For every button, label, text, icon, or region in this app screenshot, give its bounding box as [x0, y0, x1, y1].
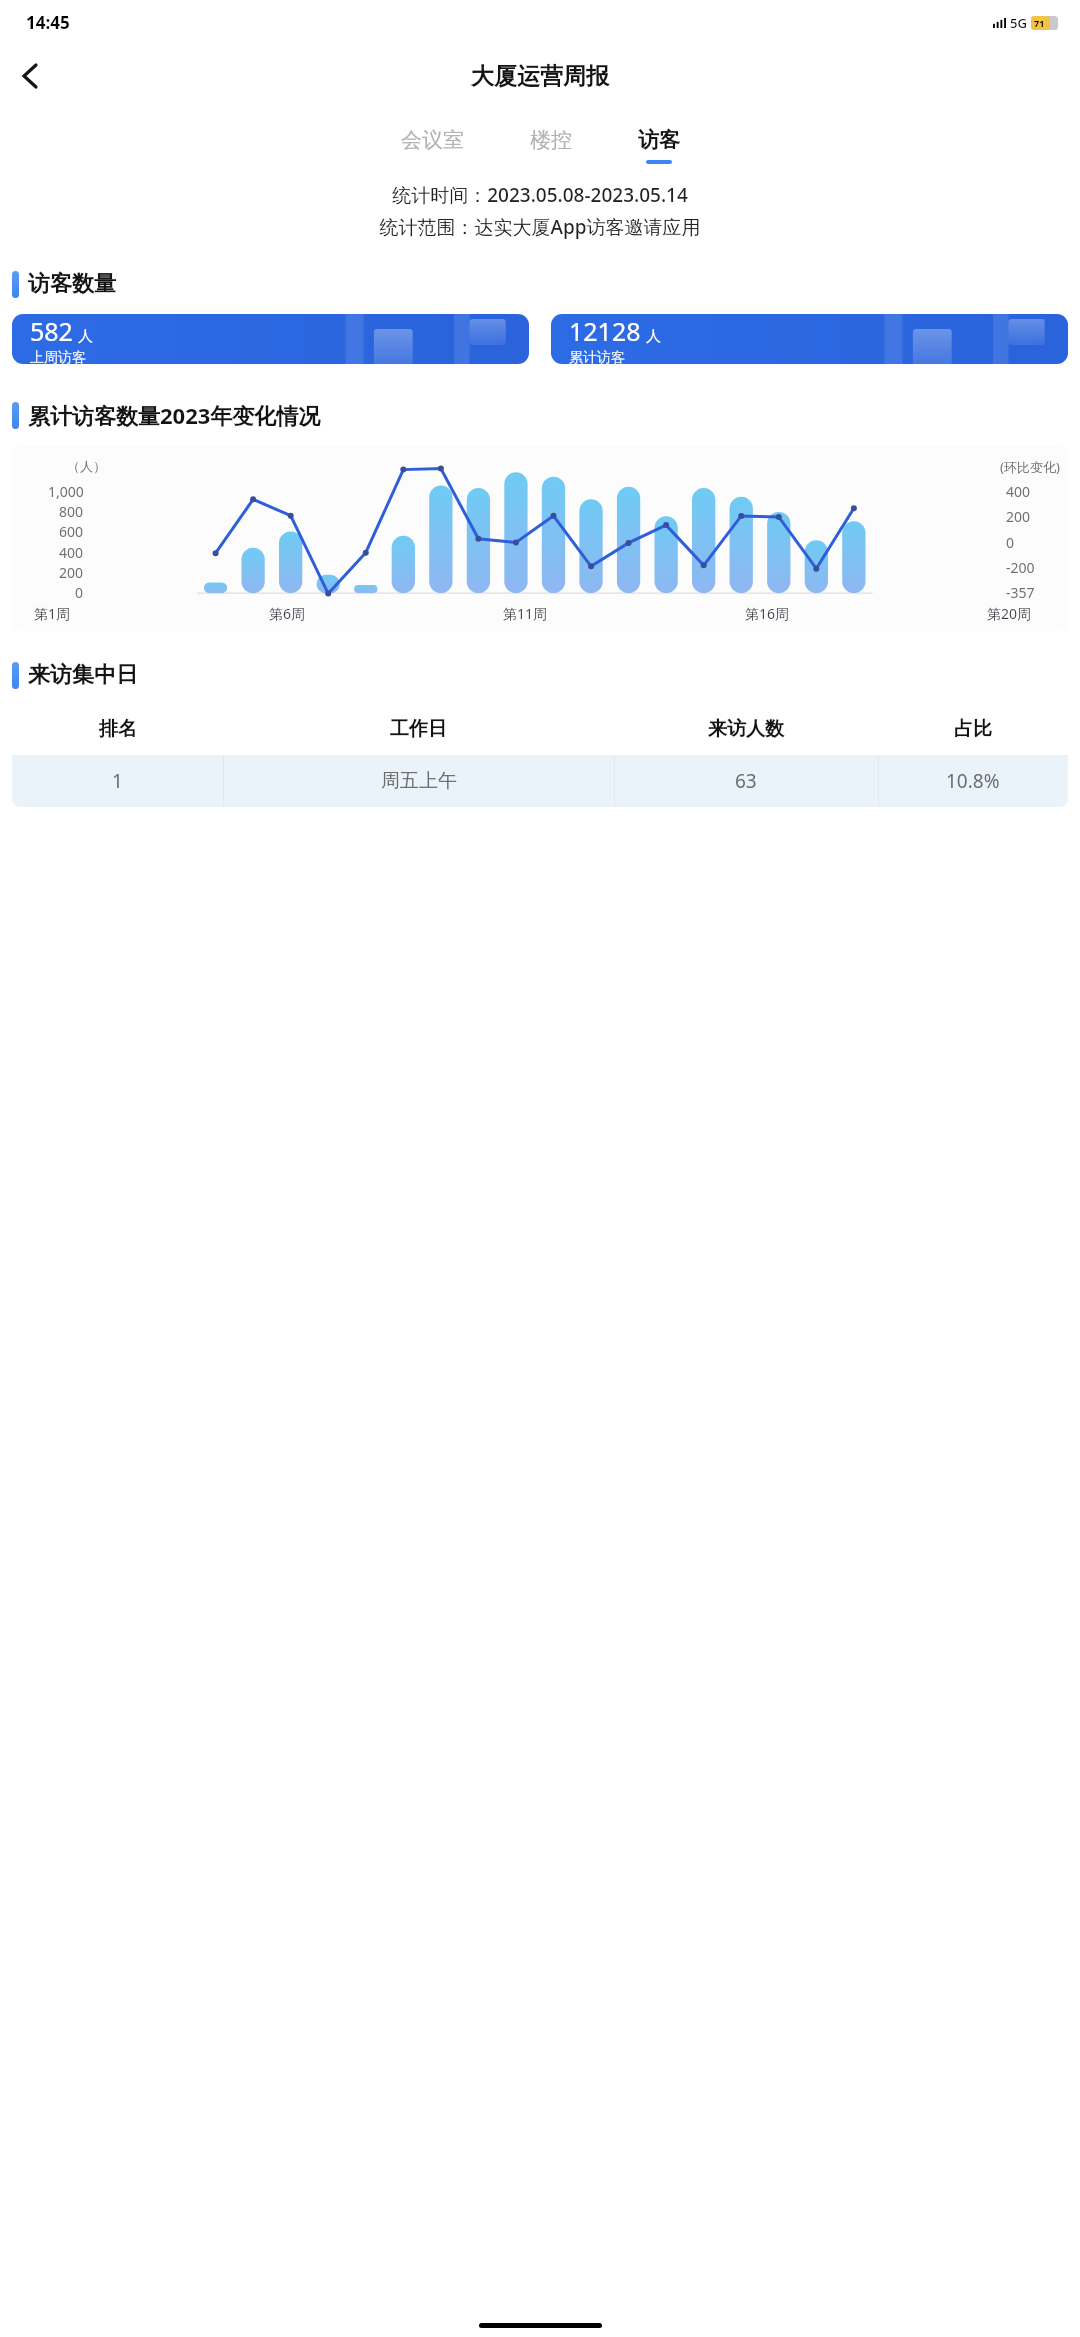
staticText: 累计访客: [569, 349, 625, 364]
staticText: 人: [78, 327, 93, 346]
staticText: -200: [1006, 558, 1035, 577]
staticText: 1: [112, 768, 123, 794]
staticText: 71: [1034, 17, 1045, 29]
staticText: 楼控: [530, 127, 572, 153]
staticText: 排名: [99, 717, 137, 741]
button[interactable]: 会议室: [397, 125, 468, 166]
staticText: 12128: [569, 314, 641, 348]
staticText: 第6周: [269, 604, 306, 623]
staticText: 访客数量: [28, 270, 116, 298]
staticText: 第11周: [503, 604, 548, 623]
staticText: 来访集中日: [28, 661, 138, 689]
staticText: 占比: [954, 717, 992, 741]
staticText: 200: [59, 563, 84, 582]
staticText: 工作日: [390, 717, 447, 741]
staticText: 600: [59, 522, 84, 541]
staticText: (环比变化): [1000, 458, 1060, 476]
button[interactable]: 楼控: [526, 125, 576, 166]
staticText: 人: [646, 327, 661, 346]
staticText: 周五上午: [381, 769, 457, 793]
button[interactable]: 访客: [634, 125, 684, 166]
button[interactable]: Back: [8, 54, 52, 98]
staticText: 582: [30, 314, 73, 348]
staticText: 800: [59, 502, 84, 521]
staticText: 5G: [1010, 14, 1027, 32]
staticText: 第1周: [34, 604, 71, 623]
staticText: 累计访客数量2023年变化情况: [28, 400, 321, 430]
staticText: 400: [59, 543, 84, 562]
staticText: 会议室: [401, 127, 464, 153]
staticText: 14:45: [26, 11, 70, 34]
staticText: 第16周: [745, 604, 790, 623]
button[interactable]: 582: [12, 314, 529, 364]
staticText: 来访人数: [708, 717, 784, 741]
staticText: 统计范围：达实大厦App访客邀请应用: [379, 214, 701, 240]
staticText: 10.8%: [946, 768, 1000, 794]
staticText: 63: [735, 768, 757, 794]
staticText: 0: [75, 583, 84, 602]
staticText: -357: [1006, 583, 1035, 602]
staticText: 第20周: [987, 604, 1032, 623]
staticText: 上周访客: [30, 349, 86, 364]
button[interactable]: 12128: [551, 314, 1068, 364]
staticText: 大厦运营周报: [471, 62, 609, 91]
staticText: 0: [1006, 533, 1015, 552]
staticText: 统计时间：2023.05.08-2023.05.14: [392, 182, 688, 208]
staticText: 访客: [638, 127, 680, 153]
staticText: 400: [1006, 482, 1031, 501]
staticText: 1,000: [48, 482, 84, 501]
staticText: 200: [1006, 507, 1031, 526]
staticText: （人）: [67, 458, 106, 474]
